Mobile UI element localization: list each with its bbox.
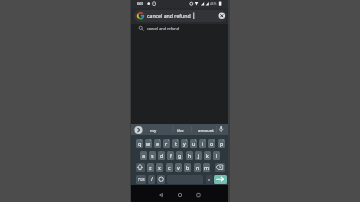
button[interactable] bbox=[174, 125, 192, 135]
button[interactable]: e bbox=[154, 139, 161, 148]
button[interactable]: f bbox=[167, 151, 174, 160]
staticText: w bbox=[146, 140, 151, 147]
button[interactable] bbox=[144, 125, 173, 135]
button[interactable] bbox=[134, 10, 227, 22]
staticText: m bbox=[204, 164, 209, 171]
button[interactable] bbox=[157, 175, 165, 184]
button[interactable]: w bbox=[145, 139, 152, 148]
staticText: c bbox=[168, 164, 171, 171]
button[interactable]: u bbox=[190, 139, 197, 148]
staticText: amount bbox=[198, 127, 214, 133]
staticText: j bbox=[198, 152, 200, 159]
button[interactable]: r bbox=[163, 139, 170, 148]
staticText: o bbox=[210, 140, 214, 147]
staticText: p bbox=[220, 140, 224, 147]
button[interactable]: ?123 bbox=[136, 175, 146, 184]
staticText: e bbox=[156, 140, 159, 147]
staticText: g bbox=[178, 152, 182, 159]
staticText: z bbox=[149, 164, 152, 171]
button[interactable]: i bbox=[199, 139, 206, 148]
staticText: / bbox=[151, 176, 153, 183]
staticText: l bbox=[216, 152, 218, 159]
staticText: 46% bbox=[210, 2, 217, 6]
staticText: y bbox=[183, 140, 186, 147]
button[interactable] bbox=[193, 190, 205, 200]
staticText: h bbox=[188, 152, 192, 159]
staticText: k bbox=[206, 152, 209, 159]
staticText: f bbox=[170, 152, 172, 159]
staticText: i bbox=[202, 140, 204, 147]
button[interactable]: q bbox=[136, 139, 143, 148]
staticText: cancel and refund bbox=[147, 12, 191, 19]
button[interactable]: c bbox=[166, 163, 173, 172]
button[interactable] bbox=[134, 125, 144, 135]
button[interactable]: t bbox=[172, 139, 179, 148]
button[interactable] bbox=[206, 175, 213, 184]
staticText: ?123 bbox=[138, 178, 145, 182]
button[interactable] bbox=[214, 175, 227, 184]
staticText: b bbox=[186, 164, 190, 171]
staticText: s bbox=[151, 152, 154, 159]
button[interactable] bbox=[136, 163, 145, 172]
staticText: my bbox=[150, 127, 157, 133]
staticText: x bbox=[158, 164, 161, 171]
button[interactable] bbox=[155, 190, 167, 200]
staticText: cancel and refund bbox=[147, 26, 179, 31]
button[interactable]: x bbox=[156, 163, 163, 172]
button[interactable] bbox=[217, 125, 226, 135]
button[interactable]: a bbox=[140, 151, 147, 160]
button[interactable]: m bbox=[203, 163, 210, 172]
button[interactable]: y bbox=[181, 139, 188, 148]
button[interactable]: d bbox=[158, 151, 165, 160]
staticText: 8:03 bbox=[137, 2, 144, 6]
staticText: q bbox=[138, 140, 142, 147]
button[interactable] bbox=[174, 190, 186, 200]
staticText: t bbox=[175, 140, 177, 147]
staticText: r bbox=[165, 140, 168, 147]
button[interactable] bbox=[192, 125, 216, 135]
staticText: d bbox=[160, 152, 164, 159]
staticText: the bbox=[177, 127, 184, 133]
button[interactable]: z bbox=[147, 163, 154, 172]
button[interactable]: v bbox=[175, 163, 182, 172]
button[interactable]: h bbox=[186, 151, 193, 160]
button[interactable]: k bbox=[204, 151, 211, 160]
button[interactable]: p bbox=[218, 139, 225, 148]
button[interactable]: n bbox=[194, 163, 201, 172]
staticText: u bbox=[192, 140, 196, 147]
button[interactable]: b bbox=[184, 163, 191, 172]
button[interactable] bbox=[216, 11, 226, 21]
staticText: v bbox=[177, 164, 180, 171]
button[interactable]: l bbox=[213, 151, 220, 160]
button[interactable]: / bbox=[148, 175, 155, 184]
button[interactable]: j bbox=[195, 151, 202, 160]
button[interactable]: g bbox=[176, 151, 183, 160]
button[interactable]: o bbox=[208, 139, 215, 148]
staticText: a bbox=[142, 152, 145, 159]
button[interactable] bbox=[131, 24, 228, 35]
button[interactable] bbox=[215, 163, 225, 172]
staticText: n bbox=[196, 164, 200, 171]
button[interactable]: s bbox=[149, 151, 156, 160]
